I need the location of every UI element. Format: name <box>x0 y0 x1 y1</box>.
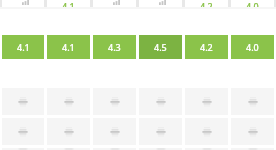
button[interactable]: Rating chart <box>139 0 182 7</box>
button[interactable]: Loading cell <box>47 148 90 150</box>
button[interactable]: 4.1 <box>2 35 44 59</box>
staticText: 4.0 <box>246 41 259 53</box>
button[interactable]: Loading cell <box>47 118 90 145</box>
button[interactable]: Loading cell <box>231 148 274 150</box>
button[interactable]: 4.0 <box>231 0 274 7</box>
staticText: 4.0 <box>246 0 259 7</box>
button[interactable]: Loading cell <box>139 148 182 150</box>
staticText: 4.1 <box>62 0 75 7</box>
staticText: 4.2 <box>200 0 213 7</box>
button[interactable]: Loading cell <box>231 88 274 115</box>
staticText: 4.3 <box>108 41 121 53</box>
button[interactable]: Loading cell <box>2 118 44 145</box>
button[interactable]: Loading cell <box>231 118 274 145</box>
button[interactable]: Loading cell <box>185 118 228 145</box>
button[interactable]: 4.2 <box>185 0 228 7</box>
button[interactable]: Rating chart <box>93 0 136 7</box>
button[interactable]: Loading cell <box>139 88 182 115</box>
button[interactable]: 4.0 <box>231 35 274 59</box>
button[interactable]: Loading cell <box>2 88 44 115</box>
button[interactable]: 4.5 <box>139 35 182 59</box>
staticText: 4.1 <box>62 41 75 53</box>
button[interactable]: 4.1 <box>47 0 90 7</box>
staticText: 4.1 <box>17 41 30 53</box>
button[interactable]: Rating chart <box>2 0 44 7</box>
staticText: 4.2 <box>200 41 213 53</box>
button[interactable]: 4.2 <box>185 35 228 59</box>
button[interactable]: Loading cell <box>185 88 228 115</box>
button[interactable]: 4.3 <box>93 35 136 59</box>
staticText: 4.5 <box>154 41 167 53</box>
button[interactable]: Loading cell <box>185 148 228 150</box>
button[interactable]: Loading cell <box>93 88 136 115</box>
button[interactable]: Loading cell <box>2 148 44 150</box>
button[interactable]: Loading cell <box>47 88 90 115</box>
button[interactable]: Loading cell <box>93 148 136 150</box>
button[interactable]: Loading cell <box>93 118 136 145</box>
button[interactable]: 4.1 <box>47 35 90 59</box>
button[interactable]: Loading cell <box>139 118 182 145</box>
